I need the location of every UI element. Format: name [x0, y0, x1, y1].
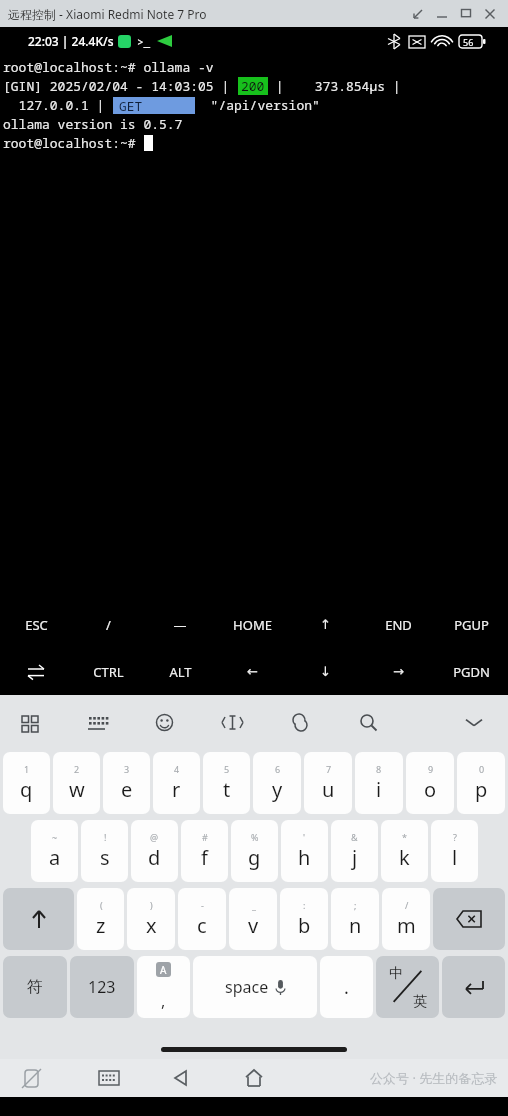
staticText: b	[298, 912, 311, 939]
staticText: PGUP	[454, 616, 489, 634]
button[interactable]: Search	[354, 708, 382, 736]
button[interactable]: #	[181, 820, 228, 882]
button[interactable]: _	[229, 888, 277, 950]
staticText: e	[121, 776, 133, 803]
button[interactable]: Enter	[442, 956, 505, 1018]
button[interactable]: Switch Chinese English	[376, 956, 439, 1018]
button[interactable]: Close	[478, 3, 502, 25]
staticText: | 373.854µs |	[268, 77, 401, 95]
button[interactable]: 5	[203, 752, 250, 814]
staticText: o	[424, 776, 437, 803]
button[interactable]: →	[362, 648, 435, 695]
button[interactable]: ↑	[289, 601, 362, 648]
staticText: r	[172, 776, 181, 803]
staticText: 123	[88, 976, 116, 998]
button[interactable]: 9	[406, 752, 454, 814]
staticText: 4	[174, 763, 180, 775]
button[interactable]: 3	[103, 752, 150, 814]
button[interactable]: Comma, capitalization	[137, 956, 190, 1018]
button[interactable]: 7	[304, 752, 352, 814]
button[interactable]: ~	[31, 820, 78, 882]
staticText: "/api/version"	[195, 96, 320, 114]
staticText: A	[160, 963, 167, 977]
button[interactable]: Back	[169, 1065, 195, 1091]
button[interactable]: (	[77, 888, 124, 950]
staticText: !	[104, 831, 107, 843]
button[interactable]: Maximize	[454, 3, 478, 25]
button[interactable]: —	[144, 601, 216, 648]
staticText: 8	[376, 763, 382, 775]
staticText: *	[402, 831, 407, 843]
staticText: END	[385, 616, 412, 634]
staticText: #	[202, 831, 208, 843]
button[interactable]: CTRL	[72, 648, 144, 695]
staticText: -	[201, 899, 204, 911]
button[interactable]: Restore down	[406, 3, 430, 25]
button[interactable]: ESC	[0, 601, 72, 648]
button[interactable]: @	[131, 820, 178, 882]
staticText: ;	[354, 899, 357, 911]
button[interactable]: /	[382, 888, 430, 950]
button[interactable]: /	[72, 601, 144, 648]
button[interactable]: -	[178, 888, 226, 950]
button[interactable]: 6	[253, 752, 301, 814]
button[interactable]: Period	[320, 956, 373, 1018]
button[interactable]: Rotate	[18, 1065, 44, 1091]
button[interactable]: )	[127, 888, 175, 950]
button[interactable]: &	[331, 820, 378, 882]
button[interactable]: PGDN	[435, 648, 508, 695]
button[interactable]: '	[281, 820, 328, 882]
button[interactable]: Home	[241, 1065, 267, 1091]
button[interactable]: !	[81, 820, 128, 882]
button[interactable]: Show keyboard	[96, 1065, 122, 1091]
button[interactable]: 4	[153, 752, 200, 814]
staticText: n	[349, 912, 362, 939]
button[interactable]: Clipboard	[286, 708, 314, 736]
button[interactable]: ↓	[289, 648, 362, 695]
staticText: ↑	[320, 617, 331, 632]
staticText: t	[223, 776, 231, 803]
staticText: 9	[428, 763, 434, 775]
staticText: space	[225, 976, 269, 998]
staticText: f	[201, 844, 208, 871]
staticText: CTRL	[93, 663, 124, 681]
staticText: 符	[27, 977, 43, 997]
button[interactable]: Minimize	[430, 3, 454, 25]
button[interactable]: :	[280, 888, 328, 950]
staticText: %	[251, 831, 259, 843]
staticText: ~	[52, 831, 58, 843]
button[interactable]: *	[381, 820, 428, 882]
staticText: c	[197, 912, 207, 939]
button[interactable]: space	[193, 956, 317, 1018]
button[interactable]: Keyboard layout	[82, 708, 110, 736]
staticText: i	[376, 776, 382, 803]
staticText: s	[100, 844, 110, 871]
staticText: ESC	[25, 616, 48, 634]
button[interactable]: Layouts	[14, 708, 42, 736]
staticText: →	[393, 664, 404, 679]
staticText: HOME	[233, 616, 272, 634]
button[interactable]: 1	[3, 752, 50, 814]
button[interactable]: END	[362, 601, 435, 648]
button[interactable]: 2	[53, 752, 100, 814]
button[interactable]: %	[231, 820, 278, 882]
button[interactable]: 0	[457, 752, 505, 814]
button[interactable]: 符	[3, 956, 67, 1018]
button[interactable]: Backspace	[433, 888, 505, 950]
button[interactable]: Shift	[3, 888, 74, 950]
staticText: g	[248, 844, 261, 871]
button[interactable]: ;	[331, 888, 379, 950]
button[interactable]: 123	[70, 956, 134, 1018]
button[interactable]: Hide keyboard	[460, 708, 488, 736]
button[interactable]: PGUP	[435, 601, 508, 648]
button[interactable]: 8	[355, 752, 403, 814]
staticText: k	[399, 844, 410, 871]
button[interactable]: Text cursor	[218, 708, 246, 736]
button[interactable]: ALT	[144, 648, 216, 695]
staticText: :	[303, 899, 306, 911]
button[interactable]: HOME	[216, 601, 289, 648]
button[interactable]	[0, 648, 72, 695]
button[interactable]: Emoji	[150, 708, 178, 736]
button[interactable]: ←	[216, 648, 289, 695]
button[interactable]: ?	[431, 820, 478, 882]
